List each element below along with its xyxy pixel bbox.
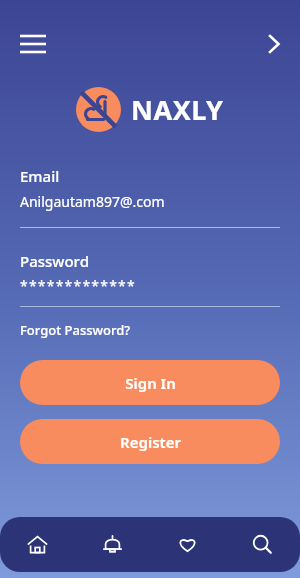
button[interactable]: Next [261, 30, 289, 58]
staticText: Password [20, 251, 89, 271]
staticText: Email [20, 166, 60, 186]
button[interactable]: Register [20, 419, 280, 464]
button[interactable]: Forgot Password? [20, 321, 131, 339]
staticText: Sign In [125, 373, 176, 393]
staticText: NAXLY [131, 91, 224, 128]
staticText: Forgot Password? [20, 321, 131, 339]
staticText: Anilgautam897@.com [20, 192, 165, 211]
button[interactable]: Home [0, 517, 75, 572]
staticText: ************* [20, 276, 136, 295]
button[interactable]: Sign In [20, 360, 280, 405]
button[interactable]: Search [225, 517, 300, 572]
button[interactable]: Favorites [150, 517, 225, 572]
staticText: Register [120, 432, 181, 452]
button[interactable]: Notifications [75, 517, 150, 572]
button[interactable]: Menu [14, 31, 52, 57]
